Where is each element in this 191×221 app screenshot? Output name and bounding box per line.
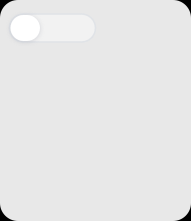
button[interactable]: Toggle (9, 14, 95, 42)
